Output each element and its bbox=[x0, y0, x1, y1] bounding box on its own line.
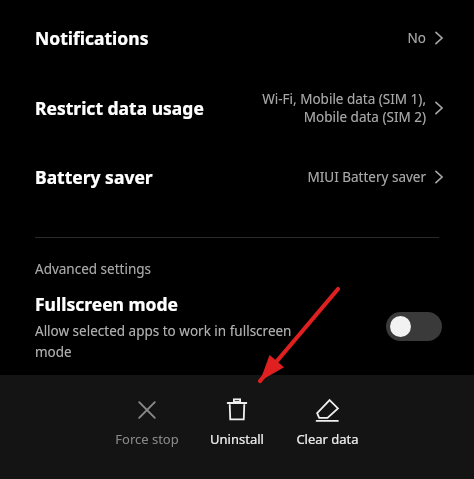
staticText: Clear data bbox=[296, 430, 359, 448]
other: Clear data bbox=[314, 397, 340, 423]
button[interactable]: Clear data bbox=[282, 393, 372, 452]
staticText: Notifications bbox=[35, 26, 149, 50]
button[interactable]: Fullscreen mode toggle bbox=[386, 312, 442, 341]
button[interactable]: Restrict data usage bbox=[0, 84, 474, 132]
staticText: Battery saver bbox=[35, 165, 153, 189]
button[interactable]: Force stop bbox=[102, 393, 192, 452]
staticText: Advanced settings bbox=[35, 260, 152, 278]
staticText: Fullscreen mode bbox=[35, 292, 179, 316]
button[interactable]: Uninstall bbox=[192, 393, 282, 452]
staticText: Restrict data usage bbox=[35, 96, 204, 120]
staticText: Mobile data (SIM 2) bbox=[303, 108, 426, 126]
staticText: Force stop bbox=[115, 430, 179, 448]
other: Uninstall bbox=[224, 397, 250, 423]
staticText: Allow selected apps to work in fullscree… bbox=[35, 322, 292, 361]
button[interactable]: Battery saver bbox=[0, 153, 474, 201]
staticText: MIUI Battery saver bbox=[307, 168, 426, 186]
staticText: No bbox=[407, 29, 426, 47]
staticText: Wi-Fi, Mobile data (SIM 1), bbox=[262, 90, 426, 108]
staticText: Uninstall bbox=[210, 430, 264, 448]
button[interactable]: Fullscreen mode bbox=[0, 292, 474, 361]
button[interactable]: Notifications bbox=[0, 14, 474, 62]
other: Force stop bbox=[134, 397, 160, 423]
